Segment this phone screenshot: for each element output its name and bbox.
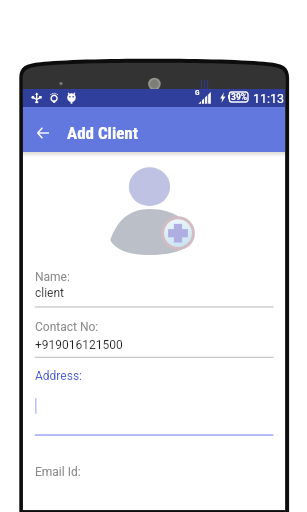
staticText: G <box>195 89 200 97</box>
staticText: Address: <box>35 369 82 383</box>
staticText: 11:13 <box>253 91 285 106</box>
button[interactable] <box>35 314 274 359</box>
staticText: Name: <box>35 270 70 284</box>
staticText: +919016121500 <box>35 338 123 352</box>
button[interactable]: Back <box>28 118 58 148</box>
button[interactable] <box>35 458 274 503</box>
staticText: Email Id: <box>35 465 81 479</box>
staticText: Add Client <box>67 123 138 143</box>
staticText: 39% <box>231 92 248 102</box>
staticText: client <box>35 286 65 300</box>
staticText: Contact No: <box>35 320 99 334</box>
button[interactable] <box>35 264 274 309</box>
button[interactable] <box>35 364 274 436</box>
